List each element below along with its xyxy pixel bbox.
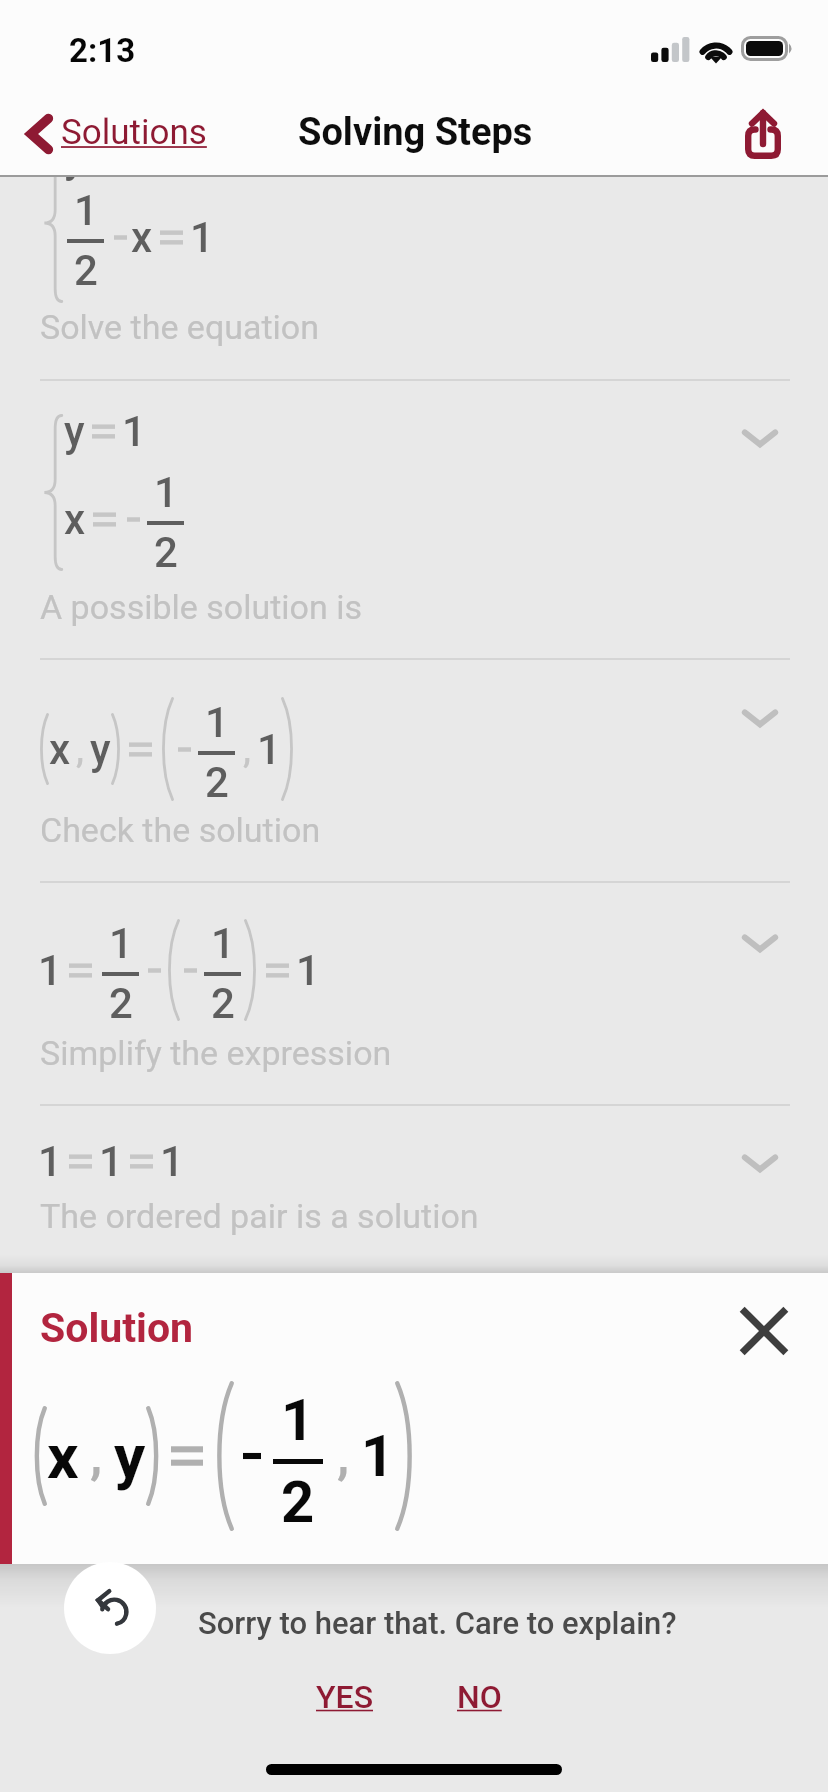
button[interactable]: YES (316, 1678, 373, 1716)
staticText: 1 (74, 186, 98, 235)
staticText: 1 (296, 946, 320, 995)
button[interactable]: Expand step (722, 1125, 798, 1201)
staticText: y (114, 1420, 146, 1493)
staticText: 1 (109, 919, 133, 968)
staticText: 2 (74, 246, 98, 295)
staticText: Simplify the expression (40, 1033, 392, 1073)
staticText: 2 (281, 1468, 315, 1536)
staticText: Solving Steps (298, 110, 533, 155)
staticText: 1 (190, 213, 214, 262)
button[interactable]: Solution (0, 1273, 828, 1564)
staticText: 2:13 (69, 31, 136, 70)
staticText: x (49, 725, 71, 774)
staticText: , (243, 728, 252, 770)
staticText: Solve the equation (40, 307, 320, 347)
staticText: , (337, 1427, 350, 1485)
staticText: , (76, 728, 85, 770)
staticText: 1 (99, 1137, 123, 1186)
staticText: y (64, 177, 85, 182)
staticText: x (64, 495, 86, 544)
staticText: x (47, 1420, 79, 1493)
staticText: 2 (205, 758, 229, 807)
staticText: A possible solution is (40, 587, 363, 627)
button[interactable]: NO (457, 1678, 502, 1716)
staticText: Check the solution (40, 810, 321, 850)
button[interactable]: Share (735, 99, 791, 169)
staticText: Solutions (61, 112, 207, 153)
button[interactable]: Solutions (19, 107, 213, 161)
staticText: x (131, 213, 153, 262)
button[interactable]: Expand step (722, 400, 798, 476)
staticText: 1 (38, 1137, 62, 1186)
button[interactable]: Expand step (722, 680, 798, 756)
staticText: The ordered pair is a solution (40, 1196, 479, 1236)
staticText: 1 (281, 1386, 315, 1454)
staticText: Solution (40, 1304, 194, 1352)
staticText: 1 (38, 946, 62, 995)
staticText: 2 (109, 979, 133, 1028)
staticText: 1 (211, 919, 235, 968)
staticText: 1 (154, 468, 178, 517)
staticText: 1 (122, 407, 146, 456)
staticText: 2 (211, 979, 235, 1028)
staticText: 1 (205, 698, 229, 747)
staticText: , (90, 1427, 103, 1485)
button[interactable]: Expand step (722, 905, 798, 981)
staticText: 2 (154, 528, 178, 577)
button[interactable]: Close (728, 1295, 800, 1367)
button[interactable]: Undo feedback (64, 1562, 156, 1654)
staticText: Sorry to hear that. Care to explain? (198, 1605, 677, 1641)
staticText: 1 (361, 1422, 395, 1490)
staticText: 1 (160, 1137, 184, 1186)
staticText: 1 (257, 725, 281, 774)
staticText: y (90, 725, 111, 774)
staticText: y (64, 407, 85, 456)
